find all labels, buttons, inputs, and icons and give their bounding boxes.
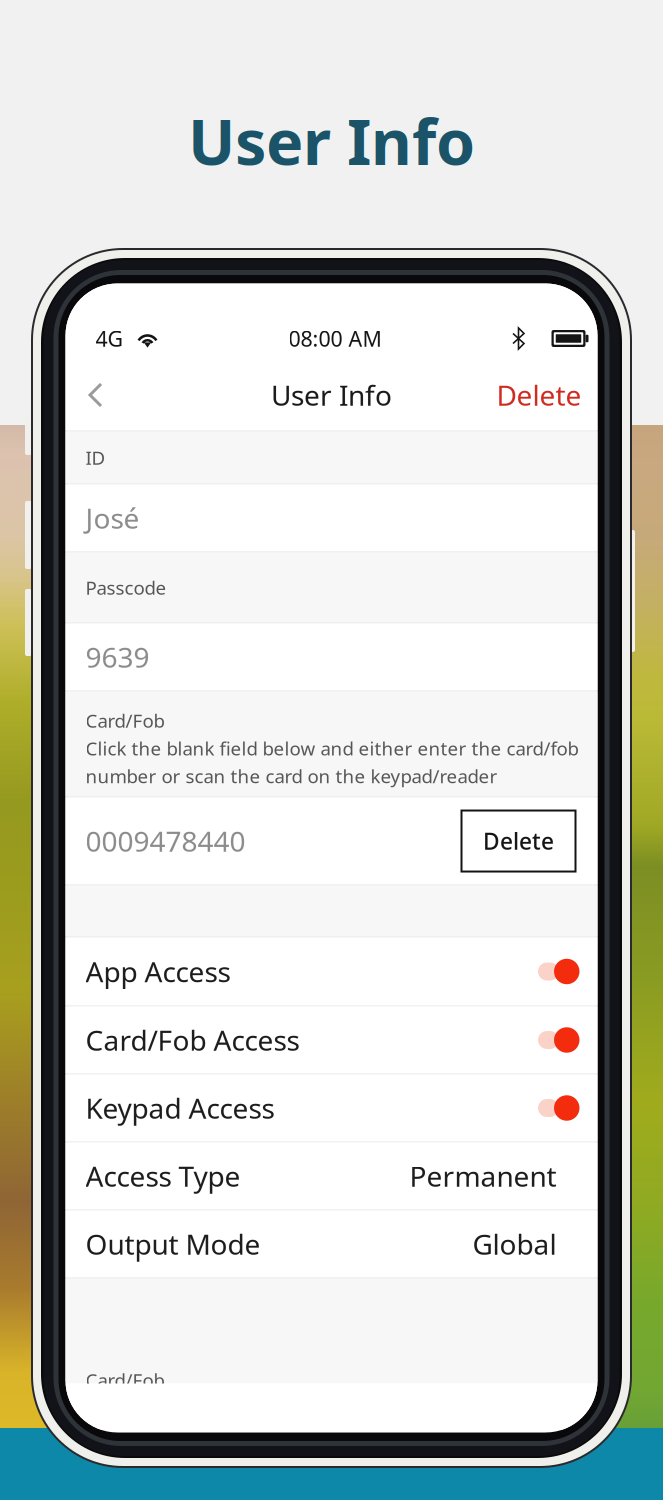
button[interactable]: Delete (461, 810, 575, 871)
staticText: Card/Fob (85, 1367, 164, 1392)
staticText: 9639 (85, 638, 149, 676)
staticText: Permanent (409, 1157, 556, 1195)
button[interactable]: Output Mode (65, 1210, 597, 1277)
staticText: Delete (483, 826, 554, 856)
staticText: Click the blank field below and either e… (85, 736, 578, 761)
button[interactable]: Access Type (65, 1142, 597, 1209)
staticText: Card/Fob (85, 708, 164, 733)
staticText: App Access (85, 953, 230, 990)
staticText: 0009478440 (85, 822, 245, 860)
staticText: Passcode (85, 575, 166, 600)
button[interactable]: 9639 (65, 623, 597, 690)
staticText: Delete (496, 376, 581, 414)
staticText: 08:00 AM (288, 324, 381, 353)
button[interactable]: Card/Fob Access (65, 1006, 597, 1073)
staticText: Access Type (85, 1157, 240, 1195)
staticText: User Info (271, 376, 392, 414)
staticText: José (85, 499, 139, 537)
staticText: Global (472, 1225, 556, 1263)
staticText: number or scan the card on the keypad/re… (85, 764, 497, 788)
staticText: User Info (188, 99, 475, 182)
staticText: ID (85, 445, 105, 470)
button[interactable]: Back (65, 359, 119, 430)
button[interactable]: José (65, 484, 597, 551)
button[interactable]: Keypad Access (65, 1074, 597, 1141)
button[interactable]: App Access (65, 937, 597, 1005)
staticText: Card/Fob Access (85, 1021, 299, 1059)
staticText: 4G (95, 324, 123, 353)
staticText: Output Mode (85, 1225, 260, 1263)
button[interactable]: Delete (478, 359, 597, 430)
staticText: Keypad Access (85, 1089, 274, 1127)
